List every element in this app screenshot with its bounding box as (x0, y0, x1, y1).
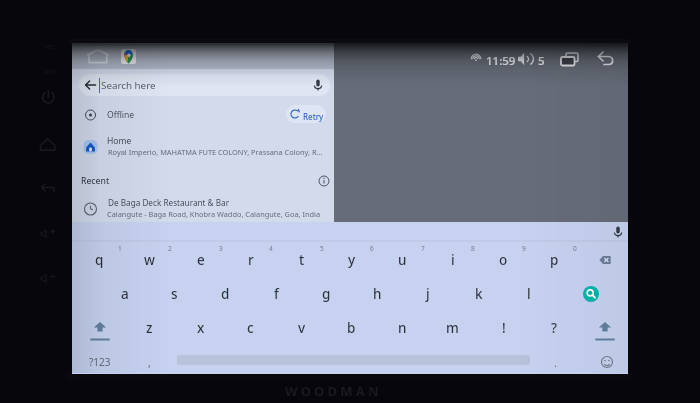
staticText: 8 (471, 244, 475, 253)
staticText: p (550, 251, 559, 269)
staticText: . (554, 355, 557, 370)
staticText: z (146, 319, 153, 337)
button[interactable]: r (225, 246, 276, 274)
staticText: ? (551, 319, 558, 337)
staticText: u (398, 251, 407, 269)
button[interactable]: Info (316, 173, 332, 189)
button[interactable]: p (529, 246, 580, 274)
staticText: y (348, 251, 356, 269)
staticText: l (527, 285, 531, 303)
button[interactable]: , (124, 348, 175, 376)
staticText: 0 (573, 244, 577, 253)
staticText: 9 (522, 244, 526, 253)
button[interactable]: a (99, 280, 150, 308)
button[interactable]: Shift (579, 313, 630, 349)
staticText: 5 (320, 244, 324, 253)
button[interactable]: b (326, 314, 377, 342)
staticText: 6 (370, 244, 374, 253)
button[interactable]: m (427, 314, 478, 342)
staticText: t (299, 251, 305, 269)
staticText: Retry (303, 111, 324, 122)
staticText: r (248, 251, 254, 269)
staticText: ?123 (89, 355, 111, 369)
staticText: 4 (269, 244, 273, 253)
staticText: m (446, 319, 459, 337)
staticText: g (322, 285, 331, 303)
button[interactable]: ! (478, 314, 529, 342)
staticText: x (197, 319, 205, 337)
staticText: j (426, 285, 430, 303)
button[interactable]: Google Maps (121, 49, 136, 64)
button[interactable]: Offline (72, 103, 334, 127)
staticText: RST (45, 68, 56, 76)
staticText: Search here (101, 79, 156, 92)
staticText: v (298, 319, 306, 337)
staticText: o (499, 251, 508, 269)
button[interactable]: d (200, 280, 251, 308)
button[interactable]: z (124, 314, 175, 342)
button[interactable]: . (530, 348, 581, 376)
button[interactable]: v (276, 314, 327, 342)
button[interactable]: t (276, 246, 327, 274)
staticText: s (171, 285, 178, 303)
button[interactable]: o (478, 246, 529, 274)
button[interactable]: Shift (74, 313, 125, 349)
staticText: b (347, 319, 356, 337)
staticText: i (451, 251, 455, 269)
staticText: MIC (44, 43, 56, 51)
button[interactable]: Search here (79, 74, 330, 96)
button[interactable]: Home (72, 132, 334, 162)
staticText: 7 (421, 244, 425, 253)
button[interactable]: Emoji (581, 348, 632, 376)
button[interactable]: l (503, 280, 554, 308)
staticText: 5 (538, 53, 545, 69)
staticText: Recent (81, 175, 110, 187)
button[interactable]: x (175, 314, 226, 342)
button[interactable]: Home (86, 48, 110, 65)
staticText: f (274, 285, 279, 303)
button[interactable]: Backspace (579, 246, 630, 274)
staticText: WOODMAN (285, 382, 382, 400)
button[interactable]: w (124, 246, 175, 274)
staticText: Offline (107, 109, 135, 121)
staticText: Royal Imperio, MAHATMA FUTE COLONY, Pras… (108, 147, 323, 157)
button[interactable]: De Baga Deck Restaurant & Bar (72, 195, 334, 222)
staticText: d (221, 285, 230, 303)
staticText: 2 (168, 244, 172, 253)
button[interactable]: y (326, 246, 377, 274)
staticText: Home (107, 135, 132, 147)
staticText: De Baga Deck Restaurant & Bar (108, 197, 230, 208)
staticText: 1 (118, 244, 122, 253)
staticText: , (148, 355, 151, 370)
staticText: q (95, 251, 104, 269)
button[interactable]: ? (529, 314, 580, 342)
button[interactable]: i (427, 246, 478, 274)
staticText: a (121, 285, 129, 303)
staticText: Calangute - Baga Road, Khobra Waddo, Cal… (107, 209, 321, 219)
button[interactable]: n (377, 314, 428, 342)
button[interactable]: Retry (286, 105, 326, 123)
button[interactable]: u (377, 246, 428, 274)
button[interactable]: k (453, 280, 504, 308)
staticText: 11:59 (486, 53, 516, 69)
button[interactable]: h (352, 280, 403, 308)
button[interactable]: Search (583, 286, 599, 302)
button[interactable]: f (251, 280, 302, 308)
staticText: w (144, 251, 155, 269)
staticText: n (398, 319, 407, 337)
staticText: e (197, 251, 205, 269)
button[interactable]: j (402, 280, 453, 308)
button[interactable]: ?123 (74, 348, 125, 376)
staticText: ! (502, 319, 506, 337)
button[interactable]: q (74, 246, 125, 274)
staticText: 3 (219, 244, 223, 253)
button[interactable]: g (301, 280, 352, 308)
staticText: k (475, 285, 483, 303)
button[interactable]: c (225, 314, 276, 342)
staticText: h (373, 285, 382, 303)
button[interactable]: s (149, 280, 200, 308)
button[interactable]: e (175, 246, 226, 274)
staticText: c (247, 319, 254, 337)
